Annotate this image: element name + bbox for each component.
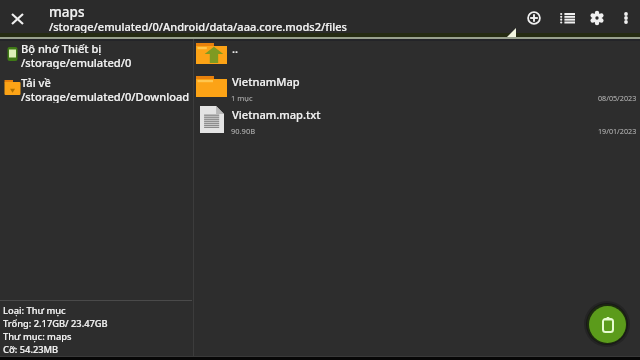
staticText: 1 mục [231,93,253,103]
button[interactable]: More options [610,2,640,34]
staticText: /storage/emulated/0 [21,55,132,69]
button[interactable]: Close [2,4,32,34]
button[interactable]: Settings [581,2,613,34]
button[interactable]: Add [518,2,550,34]
staticText: Bộ nhớ Thiết bị [21,41,102,55]
staticText: Cỡ: 54.23MB [3,343,59,356]
button[interactable]: .. [193,39,640,72]
staticText: Loại: Thư mục [3,304,66,317]
staticText: .. [232,41,239,56]
button[interactable]: Vietnam.map.txt [193,105,640,138]
staticText: Vietnam.map.txt [232,107,321,122]
button[interactable]: VietnamMap [193,72,640,105]
button[interactable]: Paste [584,301,630,347]
staticText: /storage/emulated/0/Android/data/aaa.cor… [49,19,347,34]
staticText: /storage/emulated/0/Download [21,89,190,103]
staticText: Tải về [21,75,51,89]
staticText: 90.90B [231,126,256,136]
button[interactable]: Tải về [0,72,192,106]
staticText: Thư mục: maps [3,330,72,343]
staticText: maps [49,3,85,21]
button[interactable]: Bộ nhớ Thiết bị [0,38,192,72]
staticText: 08/05/2023 [598,93,637,103]
staticText: VietnamMap [232,74,300,89]
staticText: 19/01/2023 [598,126,637,136]
staticText: Trống: 2.17GB/ 23.47GB [3,317,108,330]
button[interactable]: List view [551,2,583,34]
